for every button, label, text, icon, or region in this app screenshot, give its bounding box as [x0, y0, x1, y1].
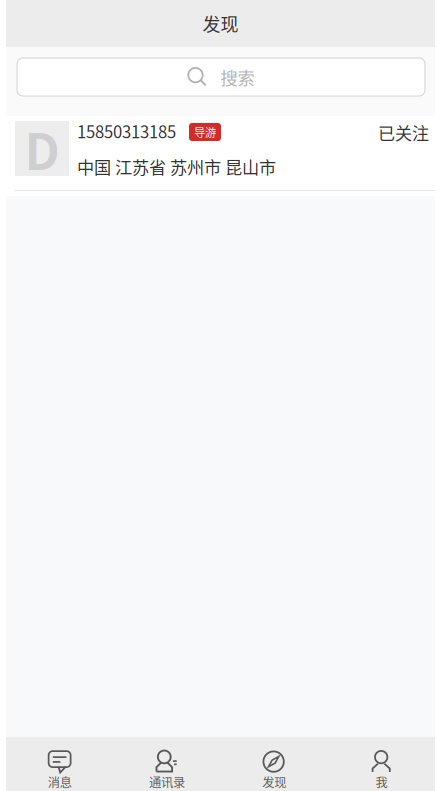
staticText: 搜索 [220, 64, 254, 90]
button[interactable]: 通讯录 [113, 733, 220, 791]
staticText: D [24, 113, 59, 184]
staticText: 15850313185 [77, 119, 176, 143]
button[interactable]: 消息 [6, 733, 113, 791]
staticText: 发现 [202, 10, 238, 37]
staticText: 通讯录 [149, 773, 185, 791]
staticText: 已关注 [378, 120, 429, 145]
staticText: 发现 [262, 773, 286, 791]
button[interactable]: 发现 [220, 733, 328, 791]
staticText: 我 [375, 773, 387, 791]
button[interactable]: D [6, 116, 435, 196]
staticText: 消息 [48, 773, 72, 791]
button[interactable]: 我 [328, 733, 435, 791]
staticText: 导游 [194, 124, 216, 140]
staticText: 中国 江苏省 苏州市 昆山市 [77, 154, 276, 179]
button[interactable]: 搜索 [17, 58, 425, 96]
